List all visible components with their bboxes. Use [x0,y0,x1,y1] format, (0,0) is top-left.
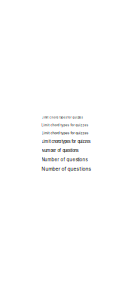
staticText: Limit chord types for quizzes [41,116,82,119]
staticText: Limit chord types for quizzes [41,123,88,127]
staticText: Number of questions [41,166,91,172]
staticText: Number of questions [41,148,78,153]
staticText: Limit chord types for quizzes [41,139,90,144]
staticText: Number of questions [41,157,87,162]
staticText: Limit chord types for quizzes [41,131,88,135]
